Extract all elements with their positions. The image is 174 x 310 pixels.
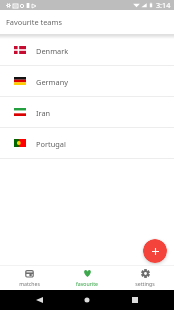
staticText: Denmark: [36, 46, 69, 56]
button[interactable]: Portugal: [0, 128, 174, 158]
staticText: matches: [19, 280, 40, 287]
staticText: settings: [135, 280, 155, 287]
button[interactable]: Iran: [0, 97, 174, 127]
button[interactable]: Denmark: [0, 35, 174, 65]
button[interactable]: Back: [36, 297, 43, 303]
button[interactable]: Add team: [143, 239, 167, 263]
button[interactable]: favourite: [58, 266, 116, 290]
button[interactable]: Home: [84, 297, 90, 303]
button[interactable]: settings: [116, 266, 174, 290]
button[interactable]: matches: [0, 266, 58, 290]
staticText: 3:14: [156, 0, 171, 10]
button[interactable]: Germany: [0, 66, 174, 96]
staticText: Iran: [36, 108, 51, 118]
staticText: Germany: [36, 77, 68, 87]
staticText: Portugal: [36, 139, 66, 149]
staticText: Favourite teams: [6, 17, 62, 27]
staticText: favourite: [76, 280, 98, 287]
